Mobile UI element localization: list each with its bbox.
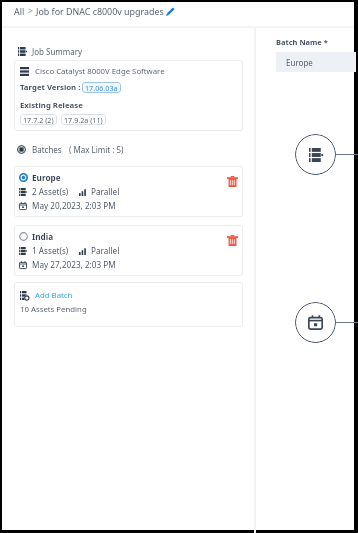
staticText: All bbox=[14, 5, 25, 17]
staticText: India bbox=[32, 231, 54, 242]
staticText: Job for DNAC c8000v upgrades bbox=[36, 5, 164, 17]
staticText: Batch Name * bbox=[276, 37, 328, 47]
staticText: May 27,2023, 2:03 PM bbox=[32, 259, 116, 270]
button[interactable]: Schedule bbox=[295, 302, 336, 343]
staticText: Target Version : bbox=[20, 82, 81, 93]
staticText: 17.06.03a bbox=[85, 83, 118, 93]
staticText: Parallel bbox=[91, 186, 120, 197]
staticText: Add Batch bbox=[35, 290, 73, 301]
staticText: 17.7.2 (2) bbox=[23, 115, 54, 125]
staticText: Batches bbox=[32, 144, 62, 155]
button[interactable]: Europe bbox=[276, 52, 356, 72]
button[interactable]: Europe bbox=[14, 166, 243, 217]
staticText: ( Max Limit : 5) bbox=[69, 144, 124, 155]
staticText: Europe bbox=[32, 172, 61, 183]
staticText: 17.9.2a (11) bbox=[64, 115, 103, 125]
button[interactable]: India bbox=[14, 225, 243, 276]
staticText: 2 Asset(s) bbox=[32, 186, 69, 197]
staticText: Cisco Catalyst 8000V Edge Software bbox=[35, 66, 165, 77]
staticText: Parallel bbox=[91, 245, 120, 256]
button[interactable]: Add Batch bbox=[20, 290, 73, 301]
button[interactable]: Delete batch bbox=[222, 225, 243, 256]
staticText: Europe bbox=[286, 57, 313, 68]
button[interactable]: Delete batch bbox=[222, 166, 243, 197]
staticText: > bbox=[28, 5, 33, 17]
staticText: May 20,2023, 2:03 PM bbox=[32, 200, 116, 211]
staticText: 10 Assets Pending bbox=[20, 304, 87, 315]
button[interactable]: Edit job name bbox=[165, 6, 176, 17]
staticText: Job Summary bbox=[32, 46, 83, 57]
staticText: 1 Asset(s) bbox=[32, 245, 69, 256]
staticText: Existing Release bbox=[20, 100, 83, 111]
button[interactable]: Batch assets bbox=[295, 134, 336, 175]
